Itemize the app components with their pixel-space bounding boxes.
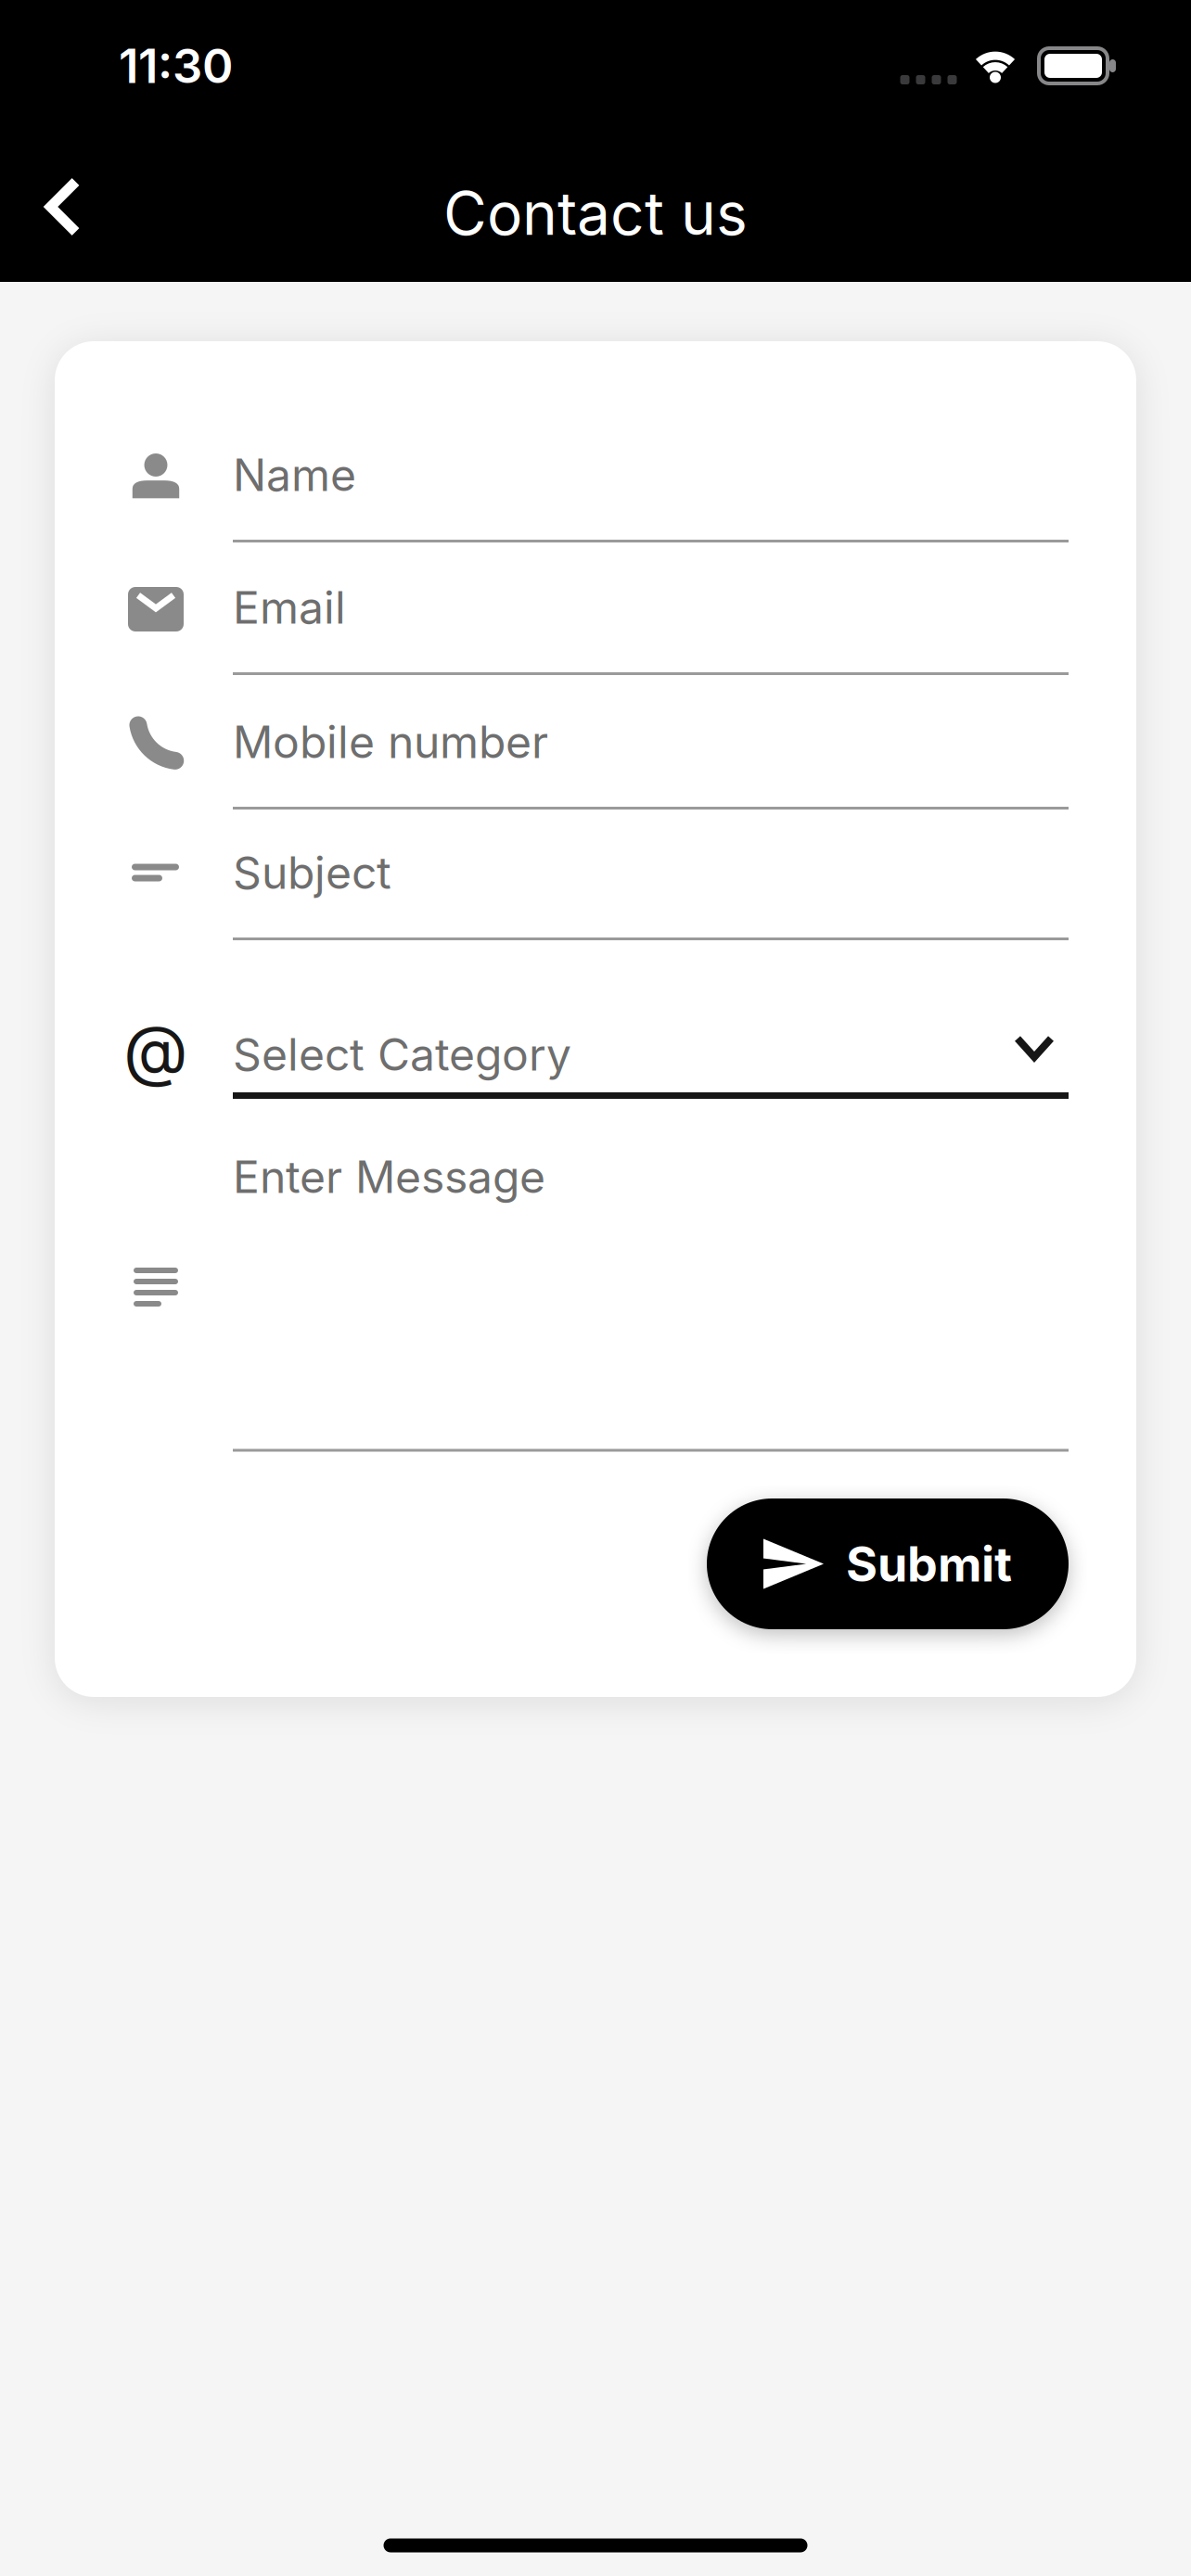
button[interactable]: Enter Message: [101, 1120, 1069, 1454]
staticText: Enter Message: [233, 1150, 545, 1203]
button[interactable]: Email: [101, 540, 1069, 675]
button[interactable]: Submit: [707, 1498, 1069, 1629]
staticText: Subject: [233, 846, 391, 899]
button[interactable]: @: [101, 1006, 1069, 1099]
button[interactable]: Name: [101, 407, 1069, 542]
staticText: Submit: [846, 1535, 1012, 1592]
staticText: Mobile number: [233, 716, 548, 768]
button[interactable]: Subject: [101, 805, 1069, 940]
staticText: Contact us: [443, 178, 748, 248]
staticText: @: [123, 1010, 188, 1089]
staticText: 11:30: [119, 38, 233, 94]
staticText: Name: [233, 449, 356, 501]
button[interactable]: [32, 163, 94, 250]
staticText: Select Category: [233, 1028, 571, 1081]
button[interactable]: Mobile number: [101, 674, 1069, 810]
staticText: Email: [233, 581, 346, 634]
